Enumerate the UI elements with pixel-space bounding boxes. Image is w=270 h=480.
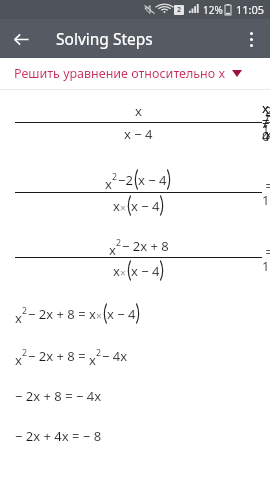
staticText: − 2x + 8 = x [28,305,96,323]
staticText: x [135,102,142,120]
staticText: 12% [203,3,223,17]
staticText: x [113,197,120,215]
staticText: 11:05 [236,2,265,17]
staticText: x [113,262,120,280]
staticText: 2 [22,305,28,317]
staticText: − 2x + 4x = − 8 [15,427,102,445]
staticText: x − 4 [124,125,153,143]
staticText: −2 [118,171,133,189]
staticText: − 2x + 8 = − 4x [15,387,102,405]
staticText: − 4x [102,347,128,365]
staticText: x − 4 [138,171,167,189]
staticText: × [120,201,126,215]
staticText: − 2x + 8 [122,237,169,255]
staticText: Решить уравнение относительно x [14,65,226,82]
staticText: x [15,351,22,369]
staticText: 2 [116,237,122,249]
staticText: 2 [112,171,118,183]
button[interactable]: Back [4,22,38,56]
button[interactable]: Решить уравнение относительно x [0,58,270,89]
staticText: 2 [96,347,102,359]
staticText: x [15,309,22,327]
staticText: x [109,241,116,259]
staticText: 2 [22,347,28,359]
staticText: x [105,175,112,193]
staticText: × [96,309,102,323]
staticText: Solving Steps [56,28,153,49]
staticText: × [120,266,126,280]
staticText: x [89,351,96,369]
staticText: x − 4 [131,197,160,215]
staticText: x − 4 [107,305,136,323]
button[interactable]: More options [234,22,268,56]
staticText: x − 4 [131,262,160,280]
staticText: − 2x + 8 = [28,347,89,365]
staticText: 2 [177,5,182,15]
